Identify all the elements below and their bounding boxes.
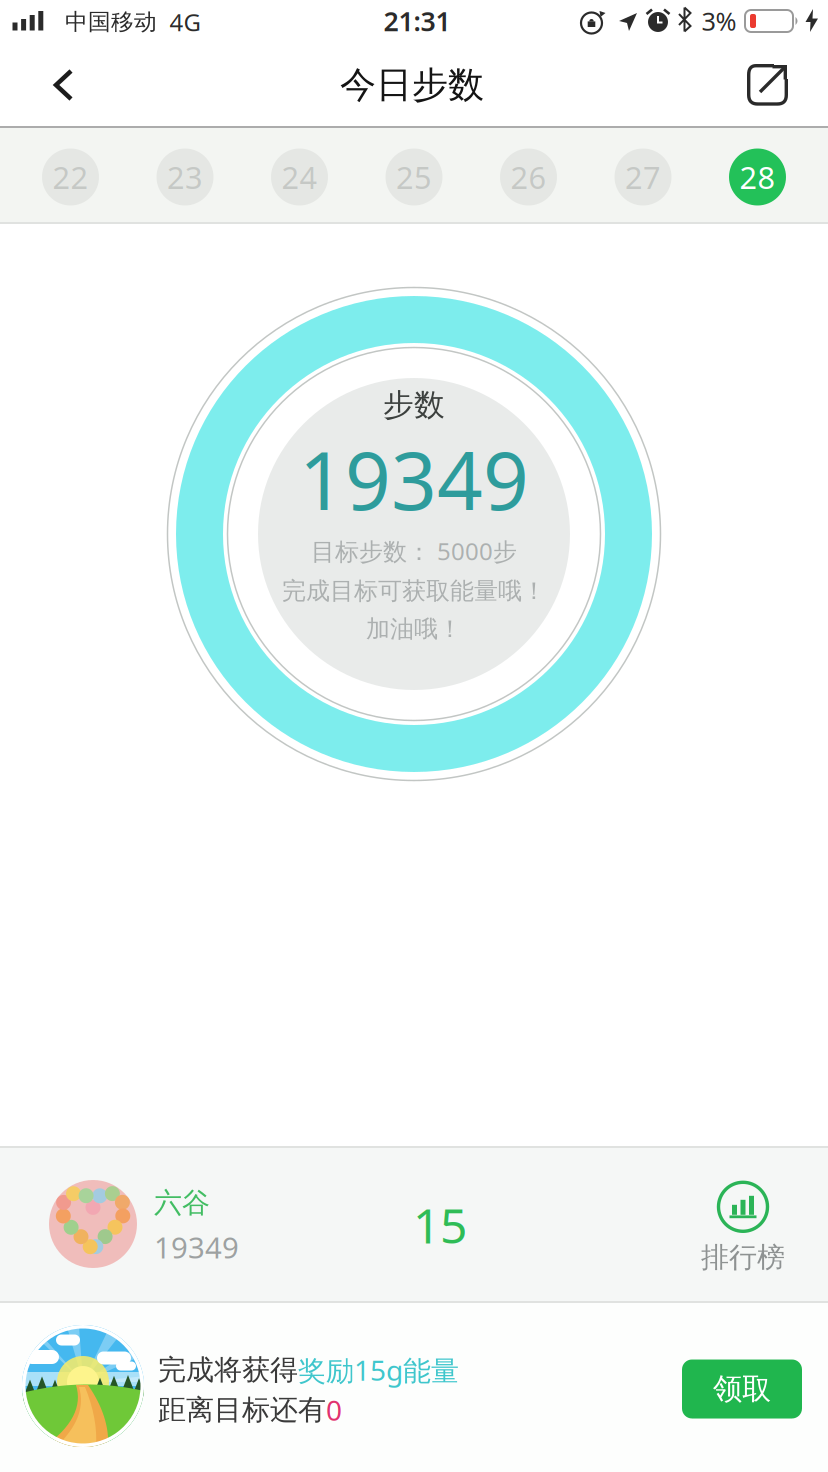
staticText: 今日步数 bbox=[340, 63, 484, 107]
staticText: 排行榜 bbox=[701, 1240, 785, 1275]
staticText: 19349 bbox=[154, 1227, 239, 1266]
button[interactable]: 27 bbox=[614, 148, 671, 205]
staticText: 奖励15g能量 bbox=[298, 1351, 459, 1389]
staticText: 完成目标可获取能量哦！ bbox=[282, 576, 546, 606]
staticText: 25 bbox=[396, 157, 432, 197]
button[interactable]: 25 bbox=[385, 148, 442, 205]
staticText: 28 bbox=[739, 157, 775, 197]
staticText: 目标步数： 5000步 bbox=[311, 535, 517, 567]
staticText: 步数 bbox=[383, 386, 445, 424]
staticText: 完成将获得 bbox=[158, 1353, 298, 1387]
staticText: 4G bbox=[169, 6, 200, 38]
staticText: 加油哦！ bbox=[366, 614, 462, 644]
staticText: 3% bbox=[701, 4, 736, 38]
button[interactable]: Share bbox=[747, 63, 789, 105]
staticText: 26 bbox=[510, 157, 546, 197]
staticText: 27 bbox=[625, 157, 661, 197]
staticText: 23 bbox=[167, 157, 203, 197]
button[interactable]: 22 bbox=[42, 148, 99, 205]
staticText: 距离目标还有 bbox=[158, 1393, 326, 1427]
staticText: 24 bbox=[281, 157, 317, 197]
staticText: 中国移动 bbox=[65, 8, 157, 36]
staticText: 六谷 bbox=[154, 1186, 210, 1220]
button[interactable]: 24 bbox=[271, 148, 328, 205]
button[interactable]: 排行榜 bbox=[701, 1181, 785, 1275]
button[interactable]: 23 bbox=[156, 148, 213, 205]
staticText: 0 bbox=[326, 1391, 342, 1429]
staticText: 21:31 bbox=[383, 3, 450, 39]
staticText: 19349 bbox=[299, 426, 529, 532]
staticText: 22 bbox=[52, 157, 88, 197]
staticText: 领取 bbox=[713, 1371, 771, 1407]
button[interactable]: 领取 bbox=[682, 1359, 802, 1418]
button[interactable]: Back bbox=[46, 66, 82, 104]
button[interactable]: 26 bbox=[500, 148, 557, 205]
button[interactable]: 28 bbox=[729, 148, 786, 205]
staticText: 15 bbox=[413, 1193, 467, 1257]
